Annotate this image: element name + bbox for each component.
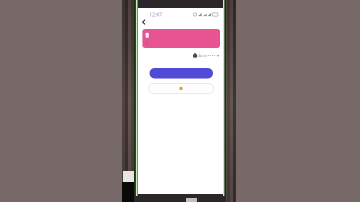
staticText: ▾ <box>217 53 219 58</box>
button[interactable]: Acct •••• <box>193 53 219 58</box>
button[interactable]: Back <box>139 17 149 27</box>
staticText: Acct •••• <box>199 53 216 58</box>
button[interactable] <box>148 83 213 93</box>
button[interactable] <box>149 68 213 78</box>
staticText: 12:47 <box>149 11 162 18</box>
